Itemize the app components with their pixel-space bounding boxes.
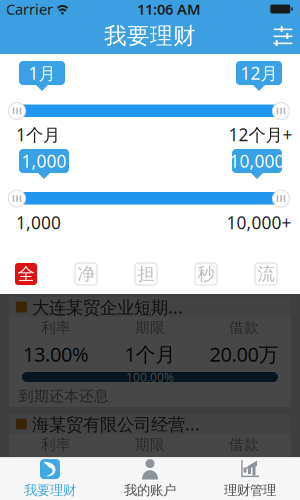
button[interactable]: 大连某贸企业短期... bbox=[9, 297, 291, 407]
staticText: 10,000+ bbox=[226, 211, 291, 234]
staticText: 我要理财 bbox=[104, 22, 196, 50]
button[interactable]: 秒 bbox=[195, 263, 217, 285]
button[interactable]: 担 bbox=[135, 263, 157, 285]
staticText: 流 bbox=[257, 263, 274, 285]
staticText: 20.00万 bbox=[209, 341, 278, 367]
button[interactable]: 理财管理 bbox=[200, 458, 300, 500]
staticText: 期限 bbox=[135, 436, 165, 454]
staticText: 1月 bbox=[28, 61, 55, 84]
staticText: 利率 bbox=[41, 436, 71, 454]
staticText: 借款 bbox=[229, 319, 259, 337]
staticText: 期限 bbox=[135, 319, 165, 337]
staticText: 理财管理 bbox=[224, 482, 276, 498]
button[interactable]: 全 bbox=[15, 263, 37, 285]
staticText: 借款 bbox=[229, 436, 259, 454]
staticText: 12个月+ bbox=[228, 123, 292, 146]
staticText: 利率 bbox=[41, 319, 71, 337]
staticText: 大连某贸企业短期... bbox=[32, 295, 183, 318]
button[interactable]: 海某贸有限公司经营... bbox=[9, 414, 291, 500]
staticText: 11:06 AM bbox=[137, 0, 201, 19]
button[interactable]: 筛选 bbox=[266, 18, 300, 54]
staticText: 到期还本还息 bbox=[19, 387, 109, 405]
staticText: 13.00% bbox=[23, 341, 89, 367]
button[interactable]: 净 bbox=[75, 263, 97, 285]
staticText: 我的账户 bbox=[124, 482, 176, 498]
staticText: 13.00% bbox=[23, 458, 89, 484]
staticText: 担 bbox=[137, 263, 154, 285]
button[interactable]: 流 bbox=[255, 263, 277, 285]
staticText: 净 bbox=[77, 263, 94, 285]
staticText: 1,000 bbox=[21, 149, 66, 172]
staticText: 我要理财 bbox=[24, 482, 76, 498]
staticText: 1个月 bbox=[124, 341, 175, 367]
button[interactable]: 我的账户 bbox=[100, 458, 200, 500]
staticText: 10,000 bbox=[229, 149, 284, 172]
button[interactable]: 我要理财 bbox=[0, 458, 100, 500]
staticText: 1,000 bbox=[16, 211, 61, 234]
staticText: 1个月 bbox=[16, 123, 60, 146]
staticText: 100.00% bbox=[126, 486, 174, 500]
staticText: 海某贸有限公司经营... bbox=[32, 412, 200, 435]
staticText: 12月 bbox=[240, 61, 277, 84]
staticText: 20.00万 bbox=[209, 458, 278, 484]
staticText: 1个月 bbox=[124, 458, 175, 484]
staticText: 100.00% bbox=[126, 369, 174, 385]
staticText: Carrier bbox=[6, 0, 53, 19]
staticText: 秒 bbox=[197, 263, 214, 285]
staticText: 全 bbox=[17, 263, 34, 285]
